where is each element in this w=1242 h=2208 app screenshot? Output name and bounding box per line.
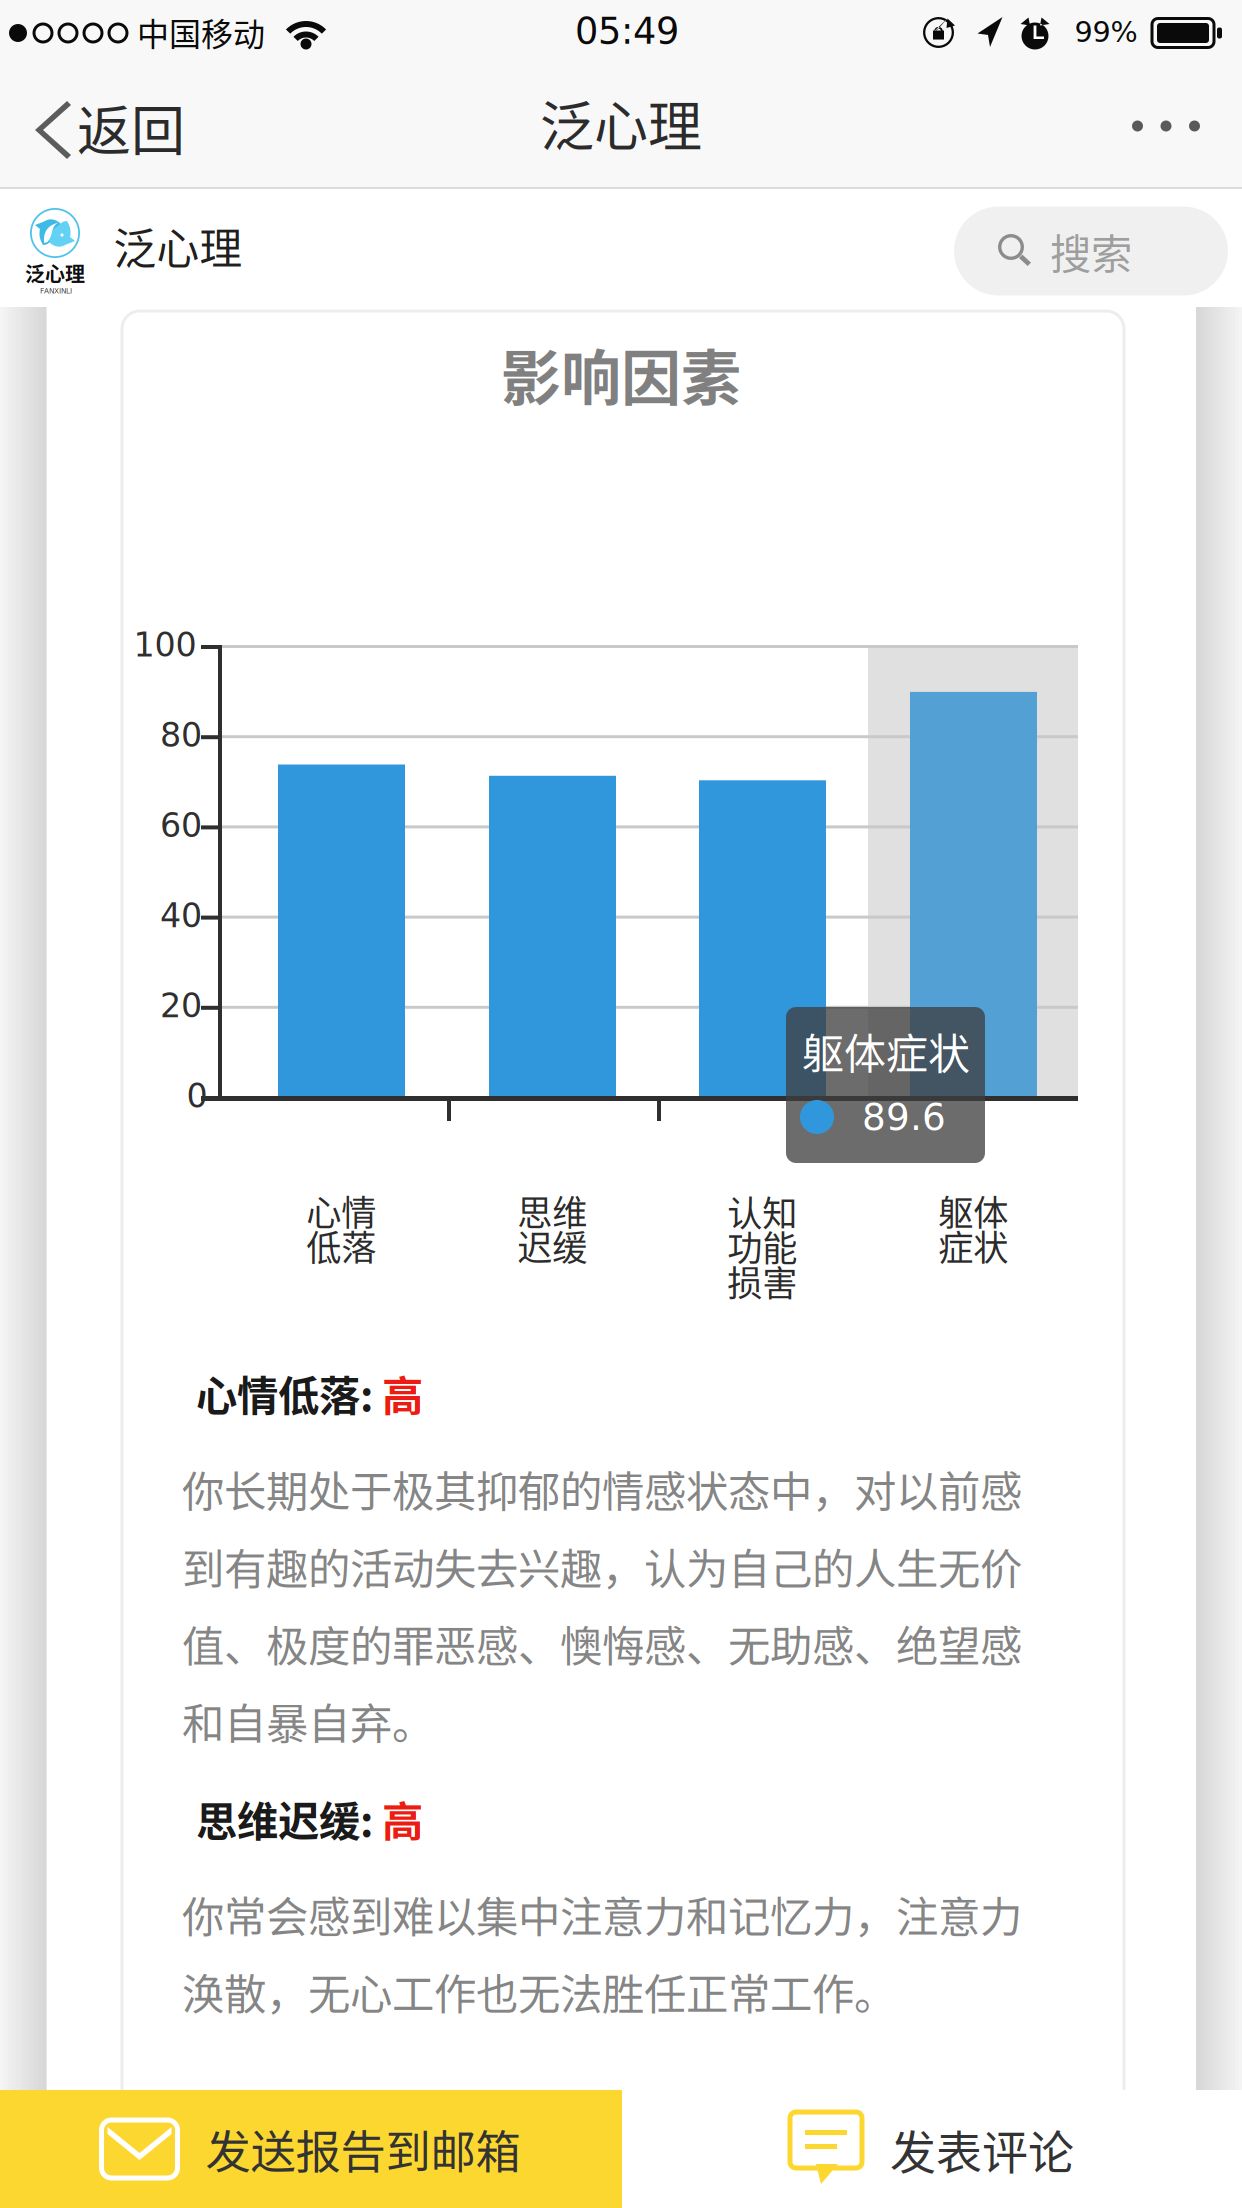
staticText: FANXINLI xyxy=(40,287,72,295)
staticText: 泛心理 xyxy=(113,215,242,277)
staticText: 心情 低落 xyxy=(306,1185,376,1271)
staticText: 泛心理 xyxy=(25,258,85,287)
staticText: 60 xyxy=(160,806,202,845)
button[interactable]: 更多 xyxy=(1096,67,1236,185)
staticText: 搜索 xyxy=(1050,221,1132,281)
button[interactable]: 搜索 xyxy=(954,206,1228,295)
staticText: 高 xyxy=(382,1788,423,1848)
staticText: 认知 功能 损害 xyxy=(727,1185,797,1306)
staticText: 0 xyxy=(186,1077,207,1115)
button[interactable]: 返回 xyxy=(0,71,211,189)
staticText: 返回 xyxy=(77,88,185,167)
button[interactable]: 发表评论 xyxy=(622,2090,1242,2208)
staticText: 发表评论 xyxy=(890,2116,1074,2182)
staticText: 躯体 症状 xyxy=(938,1185,1008,1271)
staticText: 泛心理 xyxy=(540,84,702,162)
staticText: 80 xyxy=(160,716,202,755)
staticText: 中国移动 xyxy=(137,9,265,55)
staticText: 躯体症状 xyxy=(802,1021,970,1081)
staticText: 40 xyxy=(160,896,202,935)
button[interactable]: 发送报告到邮箱 xyxy=(0,2090,622,2208)
staticText: 心情低落: xyxy=(196,1363,382,1423)
staticText: 思维 迟缓 xyxy=(517,1185,587,1271)
staticText: 你常会感到难以集中注意力和记忆力，注意力涣散，无心工作也无法胜任正常工作。 xyxy=(182,1883,1022,2022)
staticText: 影响因素 xyxy=(501,331,741,417)
staticText: 05:49 xyxy=(575,10,679,52)
staticText: 99% xyxy=(1074,15,1137,49)
staticText: 你长期处于极其抑郁的情感状态中，对以前感到有趣的活动失去兴趣，认为自己的人生无价… xyxy=(182,1458,1022,1751)
staticText: 高 xyxy=(382,1363,423,1423)
staticText: 89.6 xyxy=(862,1095,946,1139)
staticText: 20 xyxy=(160,986,202,1025)
staticText: 思维迟缓: xyxy=(196,1788,382,1848)
staticText: 发送报告到邮箱 xyxy=(205,2116,520,2182)
staticText: 100 xyxy=(133,626,196,664)
